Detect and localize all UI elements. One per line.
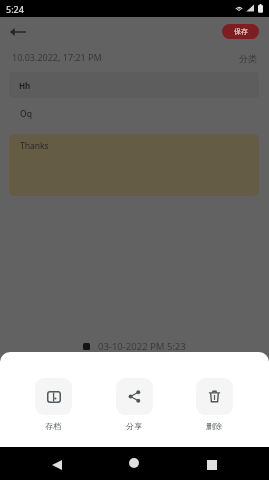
button[interactable]: Recent apps [202, 455, 221, 474]
button[interactable]: 保存 [222, 24, 259, 39]
staticText: 10.03.2022, 17:21 PM [12, 51, 102, 63]
staticText: Hh [19, 80, 31, 91]
staticText: Oq [20, 108, 32, 120]
button[interactable]: 存档 [13, 378, 93, 431]
staticText: 存档 [45, 421, 61, 431]
button[interactable]: Back [7, 21, 29, 43]
button[interactable]: Hh [9, 72, 259, 98]
button[interactable]: Back [47, 455, 66, 474]
staticText: 03-10-2022 PM 5:23 [98, 340, 186, 353]
button[interactable]: Oq [9, 103, 259, 125]
button[interactable]: Home [124, 453, 144, 473]
staticText: 分享 [126, 421, 142, 431]
staticText: 删除 [206, 421, 222, 431]
staticText: Thanks [20, 140, 49, 152]
staticText: 分类 [239, 53, 257, 64]
button[interactable]: 分类 [234, 50, 262, 66]
button[interactable]: 分享 [94, 378, 174, 431]
button[interactable]: 删除 [174, 378, 254, 431]
staticText: 保存 [234, 27, 248, 36]
staticText: 5:24 [6, 3, 24, 15]
